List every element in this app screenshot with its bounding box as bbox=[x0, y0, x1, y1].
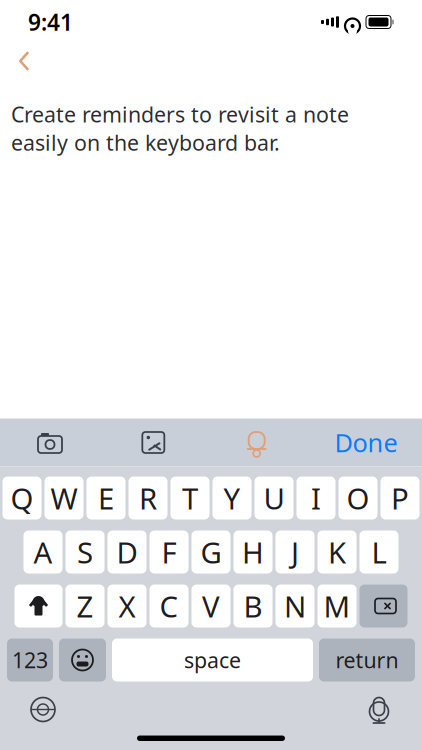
button[interactable]: H bbox=[233, 530, 272, 573]
staticText: S bbox=[77, 532, 93, 571]
staticText: K bbox=[328, 532, 346, 571]
button[interactable]: O bbox=[338, 476, 377, 519]
button[interactable]: Photos bbox=[123, 420, 183, 464]
button[interactable]: G bbox=[191, 530, 230, 573]
button[interactable]: F bbox=[149, 530, 188, 573]
staticText: V bbox=[202, 586, 220, 625]
button[interactable]: E bbox=[86, 476, 125, 519]
button[interactable]: Emoji bbox=[59, 638, 106, 681]
staticText: F bbox=[161, 532, 176, 571]
staticText: U bbox=[263, 478, 284, 517]
button[interactable]: R bbox=[128, 476, 167, 519]
staticText: R bbox=[139, 478, 157, 517]
staticText: Q bbox=[10, 478, 33, 517]
staticText: D bbox=[116, 532, 137, 571]
staticText: Y bbox=[223, 478, 240, 517]
staticText: I bbox=[311, 478, 321, 517]
staticText: J bbox=[291, 532, 299, 571]
staticText: X bbox=[118, 586, 135, 625]
button[interactable]: Shift bbox=[14, 584, 62, 627]
staticText: C bbox=[159, 586, 178, 625]
button[interactable]: L bbox=[359, 530, 398, 573]
button[interactable]: I bbox=[296, 476, 335, 519]
staticText: L bbox=[371, 532, 386, 571]
button[interactable]: D bbox=[107, 530, 146, 573]
staticText: G bbox=[200, 532, 221, 571]
staticText: M bbox=[323, 586, 350, 625]
button[interactable]: 123 bbox=[7, 638, 53, 681]
button[interactable]: A bbox=[23, 530, 62, 573]
button[interactable]: N bbox=[275, 584, 314, 627]
button[interactable]: Z bbox=[65, 584, 104, 627]
button[interactable]: J bbox=[275, 530, 314, 573]
button[interactable]: B bbox=[233, 584, 272, 627]
button[interactable]: Q bbox=[2, 476, 41, 519]
button[interactable]: P bbox=[380, 476, 419, 519]
button[interactable]: X bbox=[107, 584, 146, 627]
button[interactable]: K bbox=[317, 530, 356, 573]
button[interactable]: T bbox=[170, 476, 209, 519]
staticText: A bbox=[33, 532, 52, 571]
button[interactable]: M bbox=[317, 584, 356, 627]
button[interactable]: Back bbox=[2, 44, 46, 78]
staticText: N bbox=[284, 586, 306, 625]
button[interactable]: W bbox=[44, 476, 83, 519]
staticText: P bbox=[391, 478, 409, 517]
button[interactable]: U bbox=[254, 476, 293, 519]
button[interactable]: Delete bbox=[359, 584, 407, 627]
button[interactable]: Next keyboard bbox=[16, 689, 70, 729]
staticText: B bbox=[243, 586, 262, 625]
button[interactable]: return bbox=[319, 638, 415, 681]
staticText: Z bbox=[76, 586, 93, 625]
staticText: H bbox=[242, 532, 264, 571]
staticText: E bbox=[98, 478, 114, 517]
staticText: W bbox=[50, 478, 77, 517]
staticText: T bbox=[182, 478, 198, 517]
staticText: O bbox=[346, 478, 369, 517]
button[interactable]: space bbox=[112, 638, 313, 681]
staticText: space bbox=[184, 646, 241, 674]
staticText: 9:41 bbox=[28, 7, 73, 37]
button[interactable]: Dictation bbox=[352, 689, 406, 729]
button[interactable]: Done bbox=[330, 420, 402, 464]
staticText: return bbox=[335, 646, 398, 674]
button[interactable]: Add reminder bbox=[227, 420, 287, 464]
button[interactable]: Camera bbox=[20, 420, 80, 464]
button[interactable]: V bbox=[191, 584, 230, 627]
button[interactable]: C bbox=[149, 584, 188, 627]
button[interactable]: S bbox=[65, 530, 104, 573]
staticText: 123 bbox=[12, 646, 48, 674]
staticText: Create reminders to revisit a note easil… bbox=[11, 100, 349, 157]
button[interactable]: Y bbox=[212, 476, 251, 519]
staticText: Done bbox=[334, 426, 397, 459]
